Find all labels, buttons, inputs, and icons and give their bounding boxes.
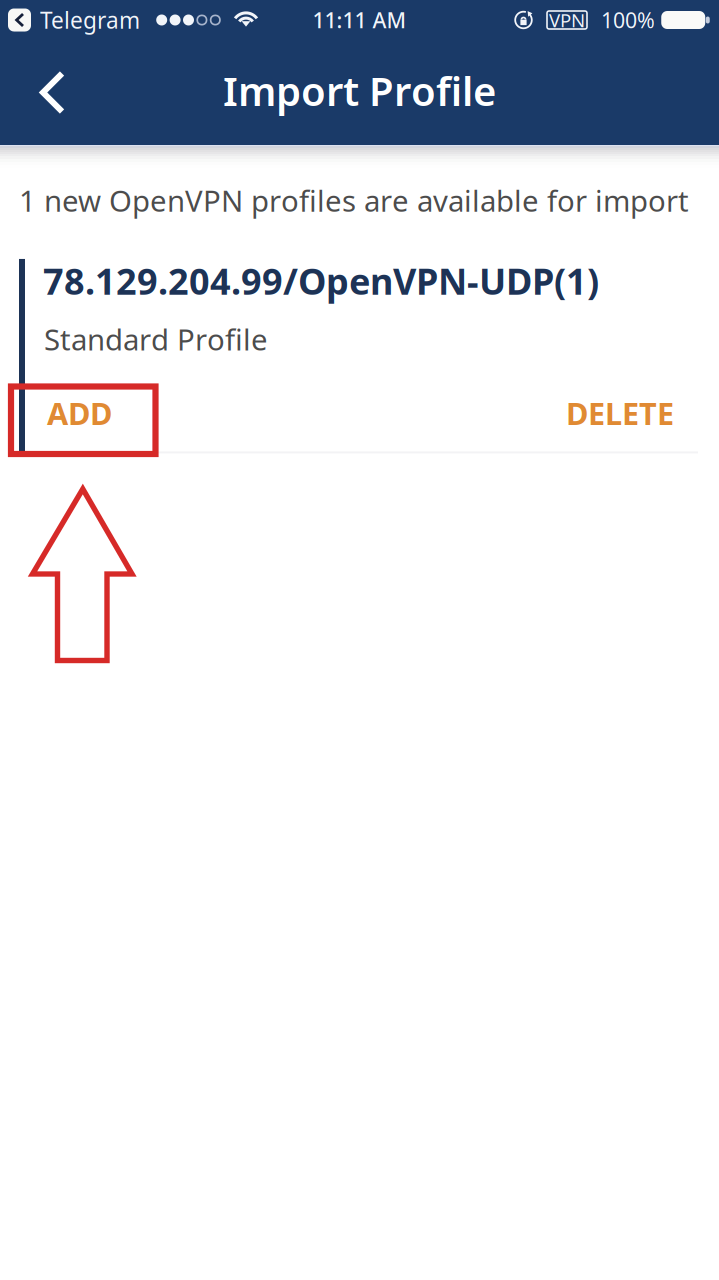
staticText: 11:11 AM bbox=[312, 6, 406, 34]
staticText: 100% bbox=[601, 6, 655, 34]
staticText: Import Profile bbox=[223, 64, 496, 117]
staticText: 1 new OpenVPN profiles are available for… bbox=[19, 181, 689, 220]
staticText: Telegram bbox=[40, 5, 140, 35]
button[interactable]: DELETE bbox=[550, 375, 690, 451]
staticText: VPN bbox=[549, 8, 585, 32]
button[interactable]: Back bbox=[0, 48, 91, 136]
staticText: ADD bbox=[47, 393, 112, 433]
staticText: Standard Profile bbox=[44, 320, 268, 359]
button[interactable]: ADD bbox=[31, 375, 128, 451]
staticText: DELETE bbox=[566, 393, 674, 433]
staticText: 78.129.204.99/OpenVPN-UDP(1) bbox=[43, 257, 599, 305]
